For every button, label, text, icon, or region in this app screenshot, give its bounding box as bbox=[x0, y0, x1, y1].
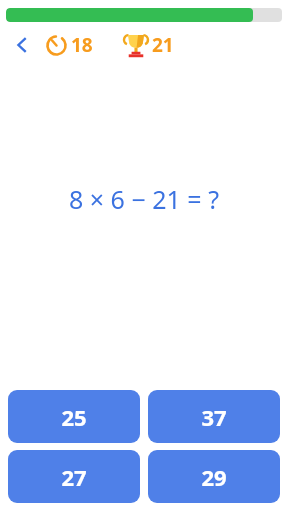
staticText: 21 bbox=[152, 32, 174, 58]
staticText: 37 bbox=[201, 402, 227, 432]
staticText: 27 bbox=[61, 462, 87, 492]
staticText: 8 × 6 − 21 = ? bbox=[69, 182, 219, 216]
button[interactable]: 29 bbox=[148, 450, 280, 503]
button[interactable]: 27 bbox=[8, 450, 140, 503]
button[interactable]: 37 bbox=[148, 390, 280, 443]
staticText: 18 bbox=[71, 32, 93, 58]
staticText: 29 bbox=[201, 462, 227, 492]
button[interactable]: Back bbox=[8, 31, 36, 59]
button[interactable]: 25 bbox=[8, 390, 140, 443]
staticText: 25 bbox=[61, 402, 87, 432]
